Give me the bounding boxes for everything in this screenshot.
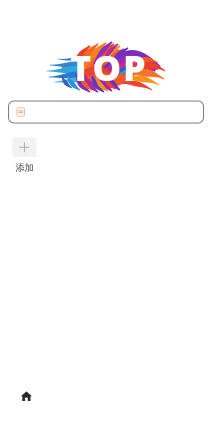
staticText: T: [70, 43, 91, 91]
button[interactable]: 添加: [0, 137, 48, 173]
staticText: 添加: [15, 162, 33, 173]
button[interactable]: [8, 101, 203, 123]
staticText: O: [92, 43, 121, 91]
button[interactable]: Home: [7, 379, 46, 413]
staticText: P: [123, 43, 146, 91]
